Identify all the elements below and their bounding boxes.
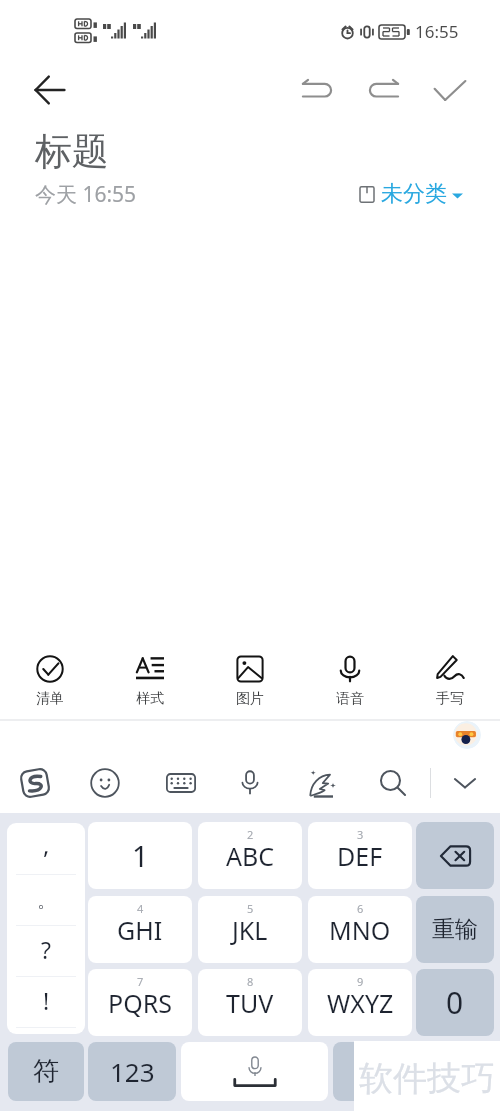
button[interactable]: 2 — [198, 822, 302, 889]
staticText: 未分类 — [381, 180, 447, 208]
staticText: 清单 — [36, 690, 64, 708]
button[interactable]: 符 — [8, 1042, 84, 1101]
button[interactable]: Handwriting — [297, 759, 345, 807]
staticText: 语音 — [336, 690, 364, 708]
staticText: 16:55 — [415, 20, 459, 43]
button[interactable]: 5 — [198, 896, 302, 963]
button[interactable]: 8 — [198, 969, 302, 1036]
button[interactable]: Redo — [358, 64, 410, 116]
staticText: JKL — [232, 913, 268, 947]
button[interactable] — [416, 1042, 494, 1101]
staticText: 图片 — [236, 690, 264, 708]
staticText: 今天 16:55 — [35, 180, 137, 209]
staticText: 8 — [247, 974, 254, 989]
staticText: ? — [41, 934, 51, 965]
button[interactable]: 未分类 — [353, 178, 469, 210]
button[interactable]: , — [7, 823, 85, 874]
button[interactable]: Undo — [291, 64, 343, 116]
staticText: 样式 — [136, 690, 164, 708]
staticText: TUV — [226, 986, 274, 1020]
button[interactable]: ! — [7, 976, 85, 1027]
staticText: ABC — [226, 839, 275, 873]
staticText: 符 — [33, 1055, 59, 1088]
staticText: 4 — [137, 901, 144, 916]
staticText: 3 — [357, 827, 364, 842]
button[interactable]: 。 — [7, 874, 85, 925]
staticText: DEF — [337, 839, 383, 873]
button[interactable]: 6 — [308, 896, 412, 963]
button[interactable]: Sogou input — [11, 759, 59, 807]
staticText: 7 — [137, 974, 144, 989]
staticText: 6 — [357, 901, 364, 916]
button[interactable]: Done — [424, 64, 476, 116]
button[interactable]: Voice input — [226, 759, 274, 807]
staticText: WXYZ — [327, 986, 394, 1020]
button[interactable]: 样式 — [100, 646, 200, 708]
button[interactable]: Keyboard layout — [157, 759, 205, 807]
button[interactable]: 3 — [308, 822, 412, 889]
staticText: 9 — [357, 974, 364, 989]
button[interactable] — [333, 1042, 421, 1101]
button[interactable]: 重输 — [416, 896, 494, 963]
staticText: GHI — [117, 913, 163, 947]
button[interactable]: 1 — [88, 822, 192, 889]
button[interactable]: 9 — [308, 969, 412, 1036]
button[interactable]: Back — [24, 64, 76, 116]
button[interactable]: Emoji — [81, 759, 129, 807]
button[interactable]: Space — [181, 1042, 328, 1101]
button[interactable]: Backspace — [416, 822, 494, 889]
button[interactable]: 7 — [88, 969, 192, 1036]
staticText: 。 — [37, 889, 56, 913]
button[interactable]: 图片 — [200, 646, 300, 708]
button[interactable]: Assistant — [453, 721, 481, 749]
staticText: 1 — [132, 836, 149, 875]
staticText: 0 — [446, 982, 464, 1023]
button[interactable]: 123 — [88, 1042, 176, 1101]
button[interactable]: 手写 — [400, 646, 500, 708]
button[interactable]: Hide keyboard — [441, 759, 489, 807]
button[interactable]: ? — [7, 925, 85, 976]
button[interactable]: 清单 — [0, 646, 100, 708]
staticText: 5 — [247, 901, 254, 916]
button[interactable]: 0 — [416, 969, 494, 1036]
staticText: 手写 — [436, 690, 464, 708]
staticText: MNO — [329, 913, 391, 947]
staticText: 2 — [247, 827, 254, 842]
button[interactable]: Search — [369, 759, 417, 807]
button[interactable]: 语音 — [300, 646, 400, 708]
staticText: 标题 — [35, 128, 109, 175]
staticText: 123 — [110, 1054, 155, 1089]
staticText: PQRS — [108, 986, 172, 1020]
button[interactable]: 4 — [88, 896, 192, 963]
staticText: 软件技巧 — [359, 1057, 495, 1100]
staticText: , — [43, 828, 50, 861]
staticText: ! — [43, 985, 50, 1016]
staticText: 重输 — [432, 915, 478, 944]
